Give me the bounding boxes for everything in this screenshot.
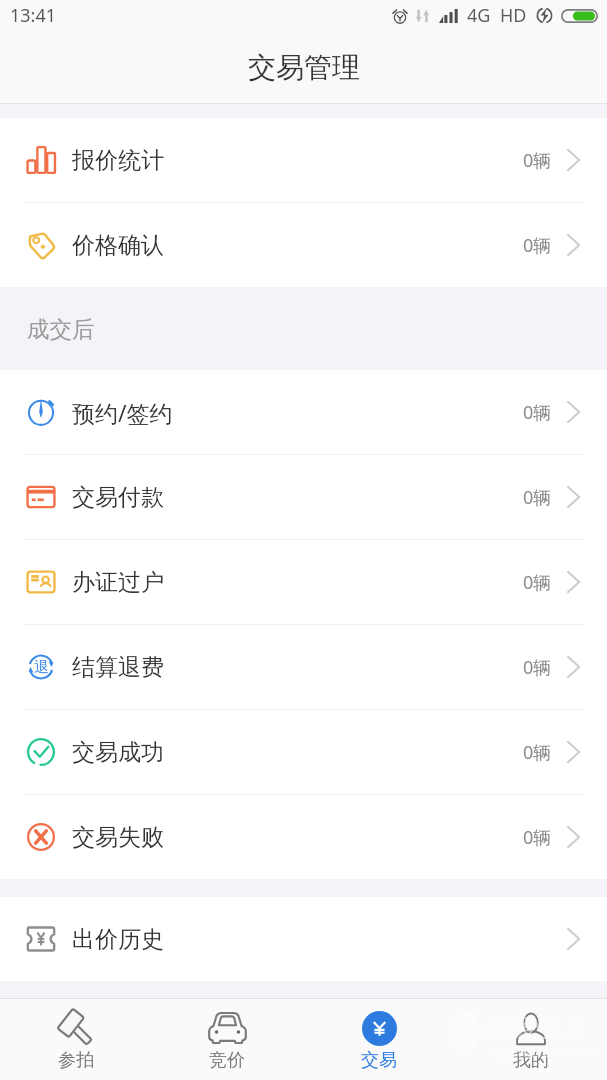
button[interactable]: 竞价 [151, 999, 303, 1080]
button[interactable]: 交易付款 [0, 455, 607, 539]
staticText: 参拍 [58, 1049, 94, 1072]
staticText: 预约/签约 [72, 397, 173, 428]
staticText: 0辆 [523, 400, 552, 425]
button[interactable]: 办证过户 [0, 540, 607, 624]
staticText: 0辆 [523, 740, 552, 765]
staticText: 交易成功 [72, 738, 164, 767]
staticText: 退 [34, 658, 49, 677]
staticText: 0辆 [523, 148, 552, 173]
staticText: 交易 [361, 1049, 397, 1072]
staticText: 0辆 [523, 485, 552, 510]
staticText: 成交后 [27, 315, 95, 343]
button[interactable]: 参拍 [0, 999, 151, 1080]
staticText: 竞价 [209, 1049, 245, 1072]
button[interactable]: 交易失败 [0, 795, 607, 879]
staticText: 0辆 [523, 825, 552, 850]
button[interactable]: 预约/签约 [0, 370, 607, 454]
staticText: 4G [467, 3, 491, 28]
staticText: 0辆 [523, 233, 552, 258]
button[interactable]: 出价历史 [0, 897, 607, 981]
staticText: 结算退费 [72, 653, 164, 682]
staticText: 0辆 [523, 570, 552, 595]
staticText: 出价历史 [72, 925, 164, 954]
staticText: 0辆 [523, 655, 552, 680]
staticText: HD [500, 3, 527, 28]
staticText: 交易付款 [72, 483, 164, 512]
button[interactable]: 报价统计 [0, 118, 607, 202]
staticText: 交易管理 [248, 50, 360, 85]
staticText: 交易失败 [72, 823, 164, 852]
staticText: 报价统计 [72, 146, 164, 175]
button[interactable]: 交易成功 [0, 710, 607, 794]
staticText: 13:41 [10, 3, 57, 28]
button[interactable]: 我的 [455, 999, 607, 1080]
button[interactable]: 退 [0, 625, 607, 709]
button[interactable]: 价格确认 [0, 203, 607, 287]
staticText: 价格确认 [72, 231, 164, 260]
staticText: 我的 [513, 1049, 549, 1072]
staticText: 办证过户 [72, 568, 164, 597]
staticText: 52android.com [492, 1041, 599, 1061]
staticText: 我爱安卓 [491, 1013, 587, 1043]
button[interactable]: 交易 [303, 999, 455, 1080]
